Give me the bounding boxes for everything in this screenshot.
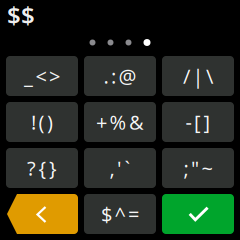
- button[interactable]: ,'`: [84, 148, 156, 188]
- staticText: +%&: [96, 109, 144, 135]
- button[interactable]: Return: [162, 194, 234, 234]
- staticText: ,'`: [109, 155, 130, 181]
- button[interactable]: ?{}: [6, 148, 78, 188]
- staticText: !(): [31, 109, 53, 135]
- staticText: -[]: [185, 109, 210, 135]
- button[interactable]: .:@: [84, 56, 156, 96]
- staticText: $^=: [101, 201, 139, 227]
- button[interactable]: /|\: [162, 56, 234, 96]
- button[interactable]: _<>: [6, 56, 78, 96]
- button[interactable]: !(): [6, 102, 78, 142]
- staticText: /|\: [183, 63, 213, 89]
- staticText: ;"~: [183, 155, 212, 181]
- staticText: ?{}: [27, 155, 57, 181]
- staticText: $$: [7, 0, 35, 31]
- button[interactable]: Delete: [6, 194, 78, 234]
- staticText: _<>: [24, 63, 60, 89]
- staticText: .:@: [103, 63, 136, 89]
- button[interactable]: -[]: [162, 102, 234, 142]
- button[interactable]: +%&: [84, 102, 156, 142]
- button[interactable]: ;"~: [162, 148, 234, 188]
- button[interactable]: $^=: [84, 194, 156, 234]
